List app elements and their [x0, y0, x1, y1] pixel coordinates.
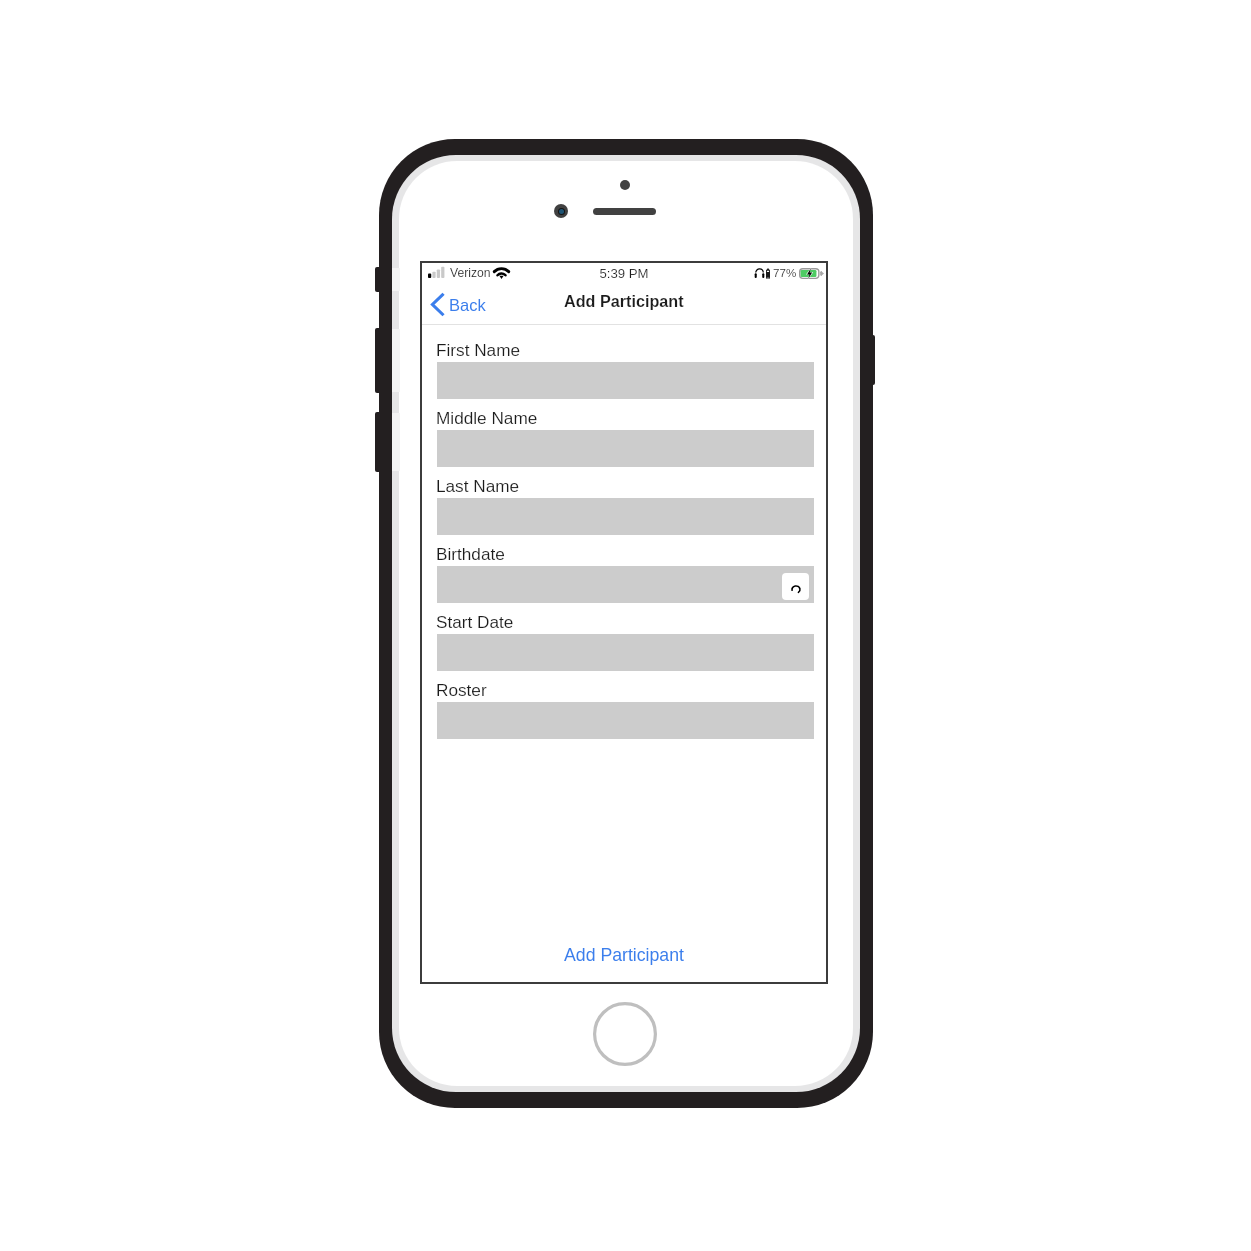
staticText: Birthdate — [436, 544, 505, 563]
staticText: Back — [449, 296, 486, 314]
staticText: Add Participant — [564, 945, 684, 965]
button[interactable]: Pick date — [782, 573, 809, 600]
staticText: Start Date — [436, 612, 514, 631]
staticText: Add Participant — [564, 292, 684, 310]
staticText: Verizon — [450, 266, 491, 280]
staticText: Middle Name — [436, 408, 538, 427]
button[interactable]: Back — [422, 289, 494, 320]
button[interactable]: Add Participant — [422, 938, 826, 972]
staticText: Roster — [436, 680, 487, 699]
staticText: 77% — [773, 266, 797, 279]
button[interactable]: Birthdate — [437, 566, 814, 603]
staticText: 5:39 PM — [422, 266, 826, 281]
staticText: First Name — [436, 340, 521, 359]
staticText: Last Name — [436, 476, 520, 495]
